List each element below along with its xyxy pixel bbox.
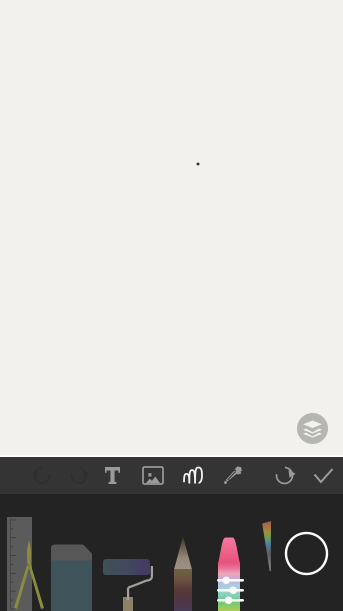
button[interactable]: Crayon: [218, 525, 240, 611]
button[interactable]: Paint roller: [101, 541, 152, 611]
button[interactable]: Redo: [265, 457, 303, 494]
button[interactable]: Pencil: [174, 520, 192, 611]
button[interactable]: Text: [93, 457, 131, 494]
button[interactable]: Eraser: [51, 538, 92, 611]
button[interactable]: Brush: [262, 521, 271, 571]
button[interactable]: Done: [304, 457, 342, 494]
button[interactable]: Compass: [14, 540, 44, 609]
button[interactable]: Ruler: [7, 517, 32, 611]
button[interactable]: Draw: [174, 457, 212, 494]
button[interactable]: Insert photo: [134, 457, 172, 494]
button[interactable]: Layers: [297, 413, 328, 444]
button[interactable]: Colour: [286, 533, 327, 574]
button[interactable]: Eyedropper: [213, 457, 251, 494]
